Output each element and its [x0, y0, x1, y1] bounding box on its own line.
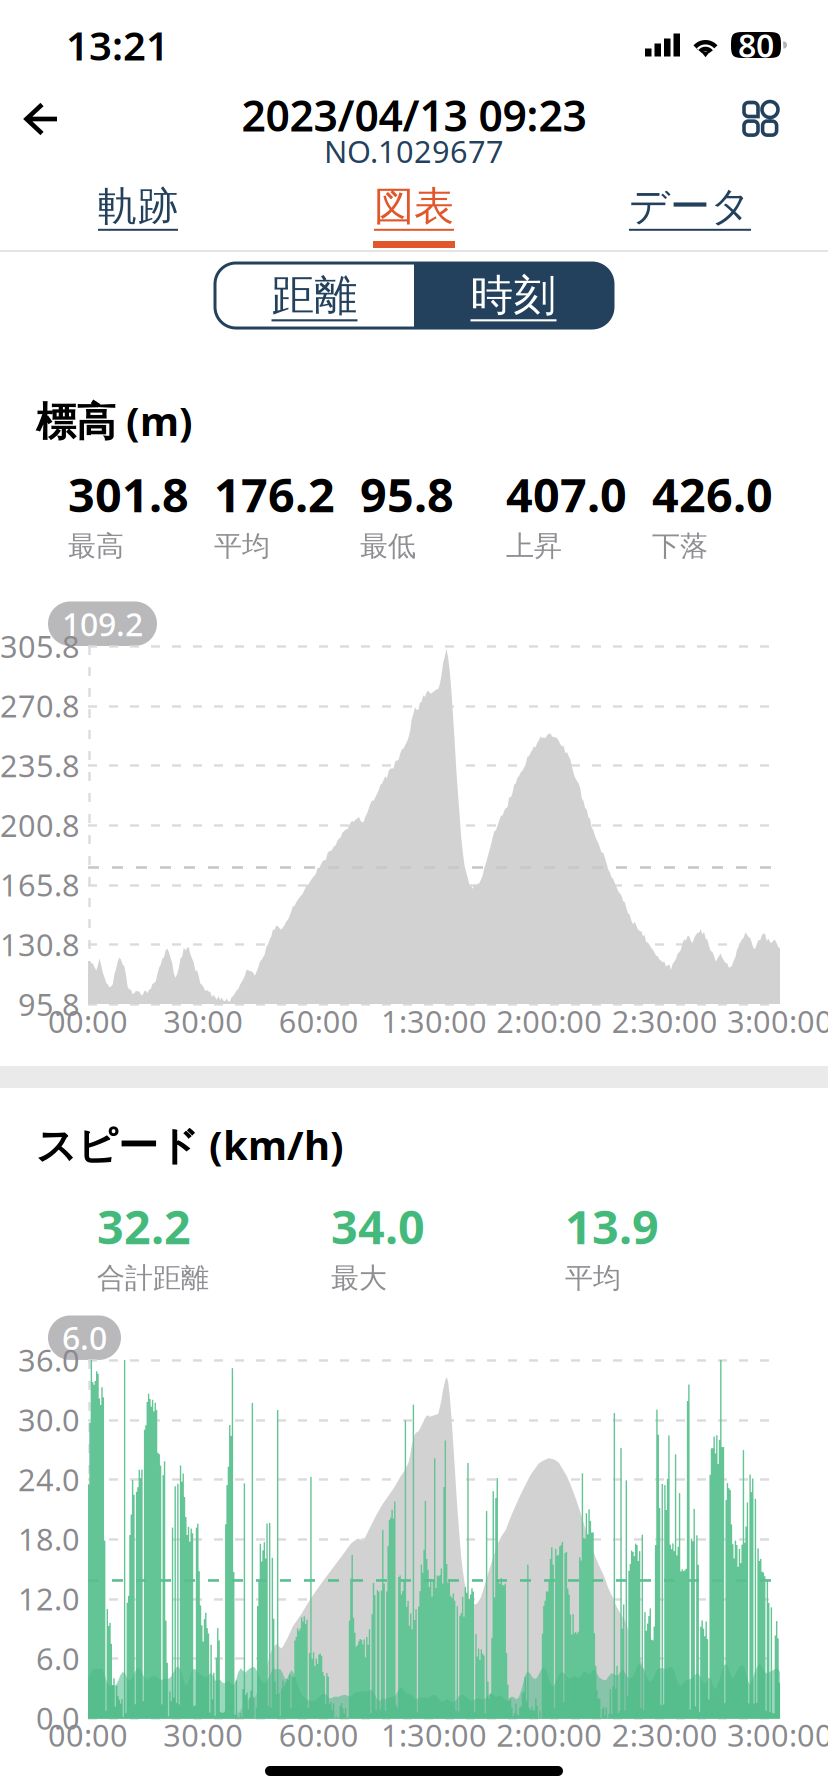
staticText: 165.8: [0, 864, 80, 905]
staticText: 3:00:00: [727, 1001, 828, 1041]
staticText: 301.8: [68, 463, 189, 525]
staticText: 平均: [214, 529, 270, 563]
staticText: 00:00: [48, 1001, 128, 1041]
staticText: 407.0: [506, 463, 627, 525]
staticText: 12.0: [18, 1578, 80, 1619]
staticText: 上昇: [506, 529, 562, 563]
staticText: 176.2: [214, 463, 335, 525]
staticText: 00:00: [48, 1715, 128, 1755]
staticText: 2:30:00: [612, 1715, 718, 1755]
button[interactable]: Layout options: [724, 90, 798, 148]
staticText: 60:00: [279, 1001, 359, 1041]
staticText: 270.8: [0, 685, 80, 726]
staticText: 軌跡: [98, 182, 178, 231]
staticText: 109.2: [62, 602, 143, 645]
staticText: NO.1029677: [324, 131, 504, 171]
button[interactable]: 時刻: [414, 263, 613, 328]
button[interactable]: データ: [552, 172, 828, 250]
staticText: 2:00:00: [496, 1001, 602, 1041]
staticText: スピード (km/h): [36, 1118, 344, 1171]
staticText: 時刻: [470, 269, 556, 322]
staticText: 図表: [374, 182, 454, 231]
staticText: 0.0: [36, 1698, 80, 1738]
staticText: 80: [738, 24, 774, 66]
staticText: 2023/04/13 09:23: [241, 87, 586, 143]
staticText: 60:00: [279, 1715, 359, 1755]
staticText: 95.8: [18, 984, 80, 1024]
button[interactable]: 図表: [276, 172, 552, 250]
staticText: 下落: [652, 529, 708, 563]
button[interactable]: 軌跡: [0, 172, 276, 250]
staticText: 30:00: [163, 1715, 243, 1755]
button[interactable]: 距離: [215, 263, 414, 328]
staticText: 2:30:00: [612, 1001, 718, 1041]
staticText: 32.2: [97, 1195, 191, 1257]
staticText: 30.0: [18, 1399, 80, 1440]
staticText: 34.0: [331, 1195, 425, 1257]
staticText: 最高: [68, 529, 124, 563]
staticText: 平均: [565, 1261, 621, 1295]
button[interactable]: Back: [5, 90, 79, 148]
staticText: 最大: [331, 1261, 387, 1295]
staticText: 6.0: [62, 1316, 107, 1359]
staticText: 200.8: [0, 805, 80, 845]
staticText: 13.9: [565, 1195, 659, 1257]
staticText: 30:00: [163, 1001, 243, 1041]
staticText: 3:00:00: [727, 1715, 828, 1755]
staticText: 最低: [360, 529, 416, 563]
staticText: 2:00:00: [496, 1715, 602, 1755]
staticText: 305.8: [0, 626, 80, 666]
staticText: 1:30:00: [381, 1715, 487, 1755]
staticText: 18.0: [18, 1519, 80, 1559]
staticText: 95.8: [360, 463, 454, 525]
staticText: 距離: [271, 269, 357, 322]
staticText: 6.0: [36, 1638, 80, 1679]
staticText: 合計距離: [97, 1261, 209, 1295]
staticText: 235.8: [0, 745, 80, 786]
staticText: 130.8: [0, 924, 80, 965]
staticText: データ: [629, 182, 751, 231]
staticText: 24.0: [18, 1459, 80, 1500]
staticText: 1:30:00: [381, 1001, 487, 1041]
staticText: 13:21: [66, 18, 169, 71]
staticText: 標高 (m): [36, 394, 193, 447]
staticText: 36.0: [18, 1340, 80, 1380]
staticText: 426.0: [652, 463, 773, 525]
